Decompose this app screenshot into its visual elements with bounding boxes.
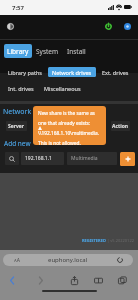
button[interactable]: System (32, 44, 62, 58)
button[interactable]: Settings (120, 19, 135, 34)
staticText: Server (8, 123, 25, 130)
button[interactable]: Int. drives (4, 83, 38, 93)
button[interactable]: Add new (4, 139, 31, 148)
button[interactable]: Ext. drives (98, 67, 133, 77)
staticText: 7:57 (12, 4, 24, 12)
staticText: New share is the same as one that alread… (38, 110, 99, 145)
staticText: REGISTERED (82, 238, 106, 243)
button[interactable]: Tabs (115, 273, 129, 287)
button[interactable]: Power (101, 19, 116, 34)
staticText: Install (67, 47, 86, 56)
staticText: Miscellaneous (44, 85, 81, 92)
button[interactable]: Library (4, 44, 32, 58)
button[interactable]: Add (120, 152, 135, 166)
button[interactable]: Library paths (4, 67, 46, 77)
staticText: euphony.local (48, 256, 88, 264)
button[interactable]: Forward (33, 273, 47, 287)
button[interactable]: Multimedia (67, 152, 117, 165)
staticText: Network drives (52, 69, 92, 76)
staticText: Library (7, 47, 29, 56)
staticText: 192.168.1.1 (25, 155, 52, 162)
staticText: Int. drives (8, 85, 34, 92)
staticText: ᴀA (14, 257, 20, 264)
staticText: Multimedia (71, 155, 98, 162)
staticText: Ext. drives (102, 69, 129, 76)
button[interactable]: Menu (3, 19, 18, 34)
button[interactable]: Share (67, 273, 81, 287)
staticText: Library paths (8, 69, 42, 76)
button[interactable]: euphony.local (3, 254, 133, 266)
staticText: System (36, 47, 59, 56)
staticText: | v5.20220122 (106, 238, 134, 243)
staticText: Network (3, 107, 32, 117)
staticText: Action (112, 123, 129, 130)
button[interactable]: Bookmarks (91, 273, 105, 287)
button[interactable]: 192.168.1.1 (21, 152, 64, 165)
button[interactable]: Search (5, 152, 19, 165)
button[interactable]: Network drives (48, 67, 96, 77)
button[interactable]: Install (62, 44, 90, 58)
button[interactable]: Miscellaneous (40, 83, 85, 93)
button[interactable]: Back (5, 273, 19, 287)
